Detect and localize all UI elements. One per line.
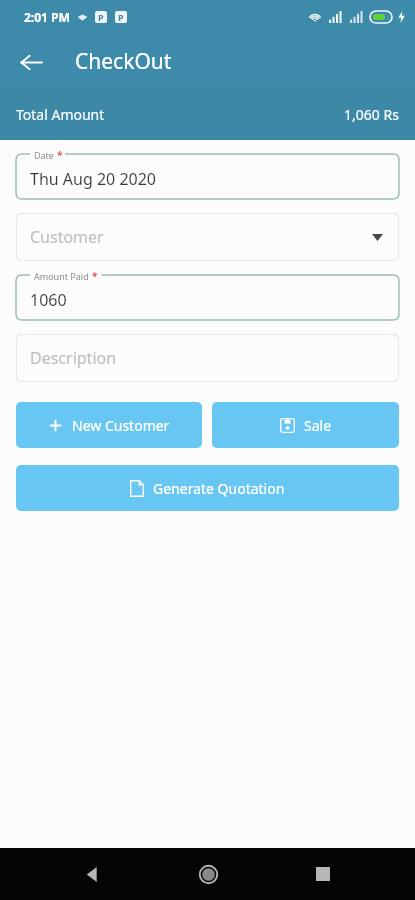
- button[interactable]: Customer: [16, 213, 399, 261]
- button[interactable]: Description: [16, 334, 399, 382]
- staticText: Thu Aug 20 2020: [30, 168, 157, 190]
- staticText: *: [57, 148, 63, 162]
- staticText: Amount Paid: [34, 270, 89, 282]
- staticText: *: [92, 269, 98, 283]
- staticText: CheckOut: [75, 47, 172, 76]
- staticText: 2:01 PM: [24, 9, 70, 25]
- button[interactable]: Sale: [212, 402, 399, 448]
- button[interactable]: New Customer: [16, 402, 202, 448]
- staticText: 1060: [30, 289, 67, 311]
- button[interactable]: Recents: [299, 850, 347, 898]
- staticText: 1,060 Rs: [344, 105, 399, 124]
- staticText: P: [118, 11, 124, 23]
- button[interactable]: Home: [184, 850, 232, 898]
- staticText: Total Amount: [16, 105, 105, 124]
- button[interactable]: Back: [10, 41, 52, 83]
- button[interactable]: Amount Paid: [16, 275, 399, 320]
- staticText: Generate Quotation: [153, 479, 285, 498]
- staticText: Description: [30, 347, 117, 369]
- staticText: Sale: [304, 416, 332, 435]
- staticText: P: [98, 11, 104, 23]
- staticText: New Customer: [72, 416, 170, 435]
- button[interactable]: Back: [68, 850, 116, 898]
- staticText: Date: [34, 149, 54, 161]
- button[interactable]: Generate Quotation: [16, 465, 399, 511]
- staticText: Customer: [30, 226, 104, 248]
- button[interactable]: Date: [16, 154, 399, 199]
